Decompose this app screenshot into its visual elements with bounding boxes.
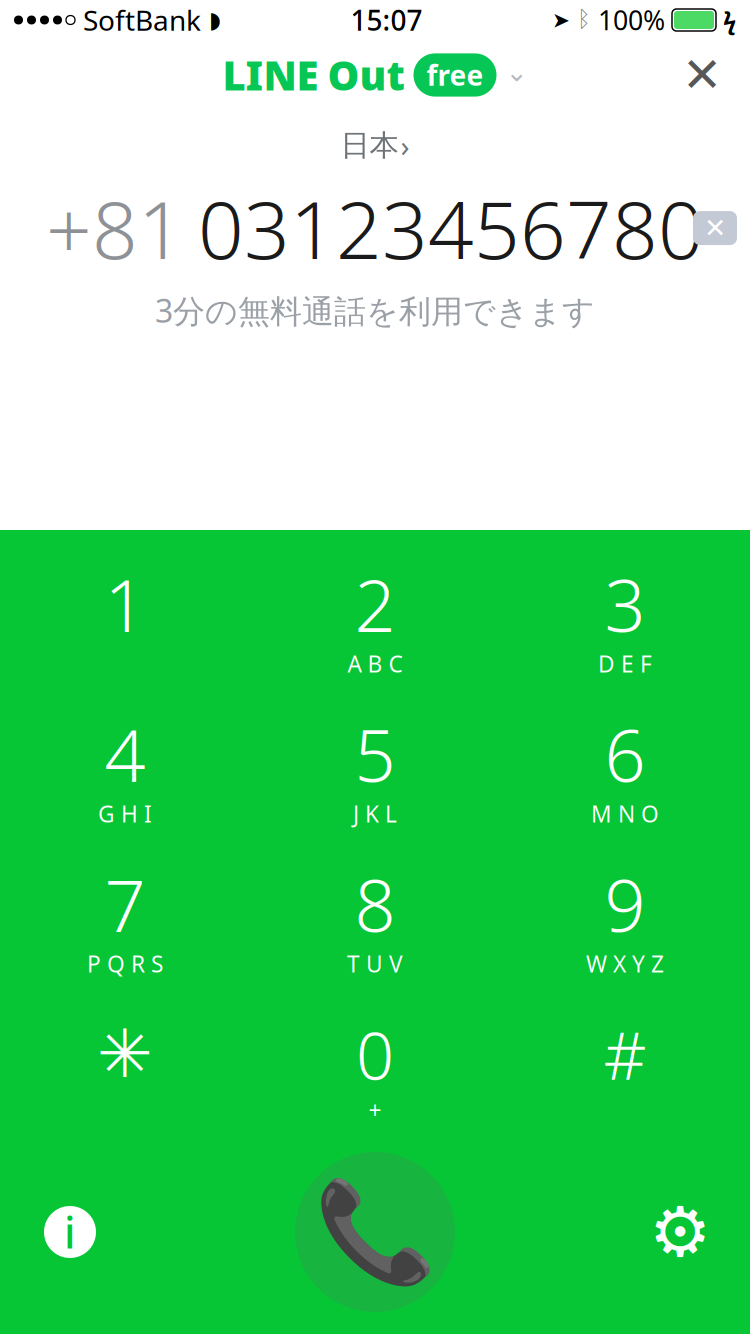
staticText: 1 bbox=[104, 556, 145, 652]
staticText: 8 bbox=[354, 856, 395, 952]
staticText: 9 bbox=[604, 856, 645, 952]
staticText: ⚙ bbox=[649, 1193, 711, 1271]
staticText: +81 bbox=[46, 175, 184, 281]
staticText: 7 bbox=[104, 856, 145, 952]
staticText: 日本 bbox=[340, 127, 398, 163]
button[interactable]: Delete bbox=[680, 198, 750, 258]
button[interactable]: 日本 bbox=[340, 122, 409, 169]
staticText: A B C bbox=[347, 649, 402, 679]
button[interactable]: 2 bbox=[250, 540, 500, 690]
staticText: ✳ bbox=[97, 1016, 153, 1092]
staticText: T U V bbox=[347, 949, 403, 979]
staticText: 3分の無料通話を利用できます bbox=[155, 289, 595, 332]
button[interactable]: ✳ bbox=[0, 990, 250, 1140]
button[interactable]: 6 bbox=[500, 690, 750, 840]
button[interactable]: 4 bbox=[0, 690, 250, 840]
staticText: free bbox=[426, 56, 483, 94]
staticText: ϟ bbox=[723, 4, 736, 36]
staticText: 4 bbox=[104, 706, 145, 802]
staticText: ◗ bbox=[209, 7, 221, 33]
staticText: LINE bbox=[222, 48, 318, 101]
button[interactable]: 1 bbox=[0, 540, 250, 690]
staticText: W X Y Z bbox=[586, 949, 664, 979]
staticText: ᛒ bbox=[577, 9, 591, 31]
staticText: › bbox=[400, 126, 409, 165]
staticText: ⌄ bbox=[505, 57, 527, 87]
staticText: M N O bbox=[591, 799, 659, 829]
button[interactable]: LINE bbox=[222, 48, 527, 101]
staticText: 15:07 bbox=[350, 1, 422, 39]
staticText: 3 bbox=[604, 556, 645, 652]
button[interactable]: # bbox=[500, 990, 750, 1140]
staticText: ✕ bbox=[704, 213, 726, 243]
staticText: 5 bbox=[354, 706, 395, 802]
staticText: J K L bbox=[353, 799, 397, 829]
staticText: ✕ bbox=[682, 48, 722, 102]
staticText: + bbox=[368, 1095, 381, 1125]
staticText: 📞 bbox=[313, 1176, 436, 1288]
staticText: SoftBank bbox=[83, 1, 201, 39]
button[interactable]: 0 bbox=[250, 990, 500, 1140]
button[interactable]: Settings bbox=[620, 1157, 740, 1307]
button[interactable]: 9 bbox=[500, 840, 750, 990]
staticText: # bbox=[603, 1010, 646, 1098]
staticText: G H I bbox=[98, 799, 152, 829]
staticText: P Q R S bbox=[87, 949, 163, 979]
staticText: i bbox=[64, 1204, 76, 1260]
button[interactable]: 8 bbox=[250, 840, 500, 990]
staticText: D E F bbox=[598, 649, 652, 679]
staticText: 0 bbox=[356, 1010, 394, 1098]
staticText: 2 bbox=[354, 556, 395, 652]
button[interactable]: Information bbox=[10, 1157, 130, 1307]
button[interactable]: 3 bbox=[500, 540, 750, 690]
staticText: 100% bbox=[598, 2, 665, 38]
button[interactable]: 5 bbox=[250, 690, 500, 840]
staticText: 6 bbox=[604, 706, 645, 802]
staticText: ➤ bbox=[552, 8, 570, 32]
button[interactable]: Call bbox=[290, 1147, 460, 1317]
staticText: 03123456780 bbox=[198, 175, 704, 281]
staticText: Out bbox=[327, 48, 404, 101]
button[interactable]: Close bbox=[670, 43, 734, 107]
button[interactable]: 7 bbox=[0, 840, 250, 990]
